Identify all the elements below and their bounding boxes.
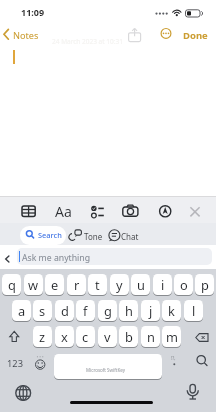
staticText: Microsoft SwiftKey (86, 367, 125, 373)
button[interactable]: u (131, 274, 150, 295)
staticText: !?, (171, 355, 176, 361)
button[interactable] (120, 202, 140, 220)
button[interactable] (164, 354, 185, 379)
button[interactable]: o (174, 274, 193, 295)
staticText: f (83, 302, 88, 319)
staticText: o (180, 276, 188, 293)
button[interactable]: h (119, 300, 138, 321)
button[interactable] (106, 226, 139, 243)
button[interactable] (188, 326, 214, 347)
button[interactable]: c (76, 326, 95, 347)
staticText: m (166, 328, 178, 345)
staticText: 11:09 (21, 6, 45, 18)
staticText: Aa (55, 202, 72, 221)
staticText: j (149, 302, 153, 319)
button[interactable]: y (110, 274, 129, 295)
staticText: c (82, 328, 89, 345)
staticText: b (125, 328, 133, 345)
staticText: l (192, 302, 196, 319)
button[interactable]: j (141, 300, 160, 321)
staticText: 123 (7, 357, 23, 370)
staticText: Done (183, 29, 208, 42)
button[interactable]: r (67, 274, 86, 295)
staticText: k (168, 302, 175, 319)
button[interactable]: d (55, 300, 74, 321)
staticText: z (39, 328, 46, 345)
button[interactable] (17, 248, 212, 265)
staticText: r (74, 276, 80, 293)
staticText: Ask me anything (22, 252, 91, 264)
button[interactable]: n (141, 326, 160, 347)
button[interactable] (180, 27, 210, 43)
staticText: Notes (13, 29, 39, 42)
button[interactable] (54, 354, 162, 379)
button[interactable]: m (162, 326, 181, 347)
staticText: n (147, 328, 155, 345)
button[interactable]: v (98, 326, 117, 347)
button[interactable] (18, 202, 39, 220)
button[interactable] (2, 326, 30, 347)
staticText: w (28, 276, 39, 293)
button[interactable] (20, 226, 66, 245)
button[interactable]: g (98, 300, 117, 321)
staticText: Tone (84, 231, 103, 242)
staticText: u (137, 276, 145, 293)
staticText: g (104, 302, 112, 319)
staticText: s (39, 302, 46, 319)
staticText: d (61, 302, 69, 319)
button[interactable] (2, 26, 44, 43)
button[interactable]: e (45, 274, 64, 295)
button[interactable] (182, 383, 203, 403)
button[interactable]: s (33, 300, 52, 321)
button[interactable]: a (12, 300, 31, 321)
button[interactable] (13, 383, 34, 403)
staticText: Chat (121, 231, 139, 242)
staticText: Search (38, 230, 62, 240)
button[interactable] (188, 204, 202, 219)
button[interactable] (158, 202, 174, 220)
button[interactable] (32, 354, 50, 379)
button[interactable]: x (55, 326, 74, 347)
staticText: p (201, 276, 209, 293)
button[interactable] (2, 354, 30, 379)
button[interactable] (67, 226, 100, 243)
staticText: e (51, 276, 59, 293)
button[interactable]: k (162, 300, 181, 321)
button[interactable]: t (88, 274, 107, 295)
button[interactable]: f (76, 300, 95, 321)
button[interactable]: z (33, 326, 52, 347)
button[interactable]: p (195, 274, 214, 295)
button[interactable]: q (2, 274, 21, 295)
staticText: h (125, 302, 133, 319)
staticText: t (95, 276, 100, 293)
button[interactable]: b (119, 326, 138, 347)
button[interactable] (88, 202, 107, 220)
staticText: y (116, 276, 123, 293)
staticText: x (61, 328, 68, 345)
staticText: i (161, 276, 165, 293)
staticText: 24 March 2023 at 10:31 (52, 37, 123, 46)
button[interactable] (188, 354, 214, 379)
button[interactable]: i (153, 274, 172, 295)
staticText: v (104, 328, 111, 345)
staticText: q (8, 276, 16, 293)
staticText: a (18, 302, 26, 319)
button[interactable]: l (184, 300, 203, 321)
button[interactable]: w (24, 274, 43, 295)
